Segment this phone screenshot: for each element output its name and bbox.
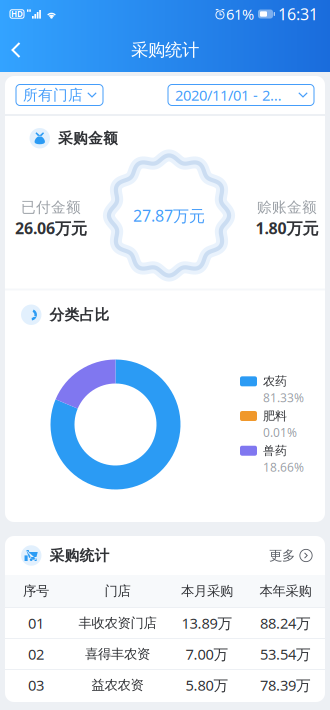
staticText: 肥料 <box>263 409 287 423</box>
staticText: 13.89万 <box>181 613 232 633</box>
staticText: 更多 <box>269 547 295 564</box>
staticText: 01 <box>28 613 44 633</box>
staticText: 88.24万 <box>260 613 311 633</box>
staticText: 采购统计 <box>131 39 199 61</box>
staticText: 16:31 <box>278 3 318 25</box>
button[interactable]: Back <box>0 32 32 68</box>
staticText: 采购金额 <box>58 129 118 147</box>
staticText: 02 <box>28 644 44 664</box>
staticText: 所有门店 <box>23 86 83 104</box>
staticText: 分类占比 <box>49 306 109 324</box>
staticText: 2020/11/01 - 2… <box>175 85 282 105</box>
staticText: 喜得丰农资 <box>85 646 150 662</box>
button[interactable]: 更多 <box>269 541 325 570</box>
staticText: 本月采购 <box>181 583 233 599</box>
staticText: 03 <box>28 675 44 695</box>
staticText: 5.80万 <box>185 675 228 695</box>
button[interactable]: 2020/11/01 - 2… <box>168 84 314 105</box>
button[interactable]: 所有门店 <box>16 84 103 105</box>
staticText: 61% <box>226 4 254 24</box>
staticText: 丰收农资门店 <box>78 615 156 631</box>
staticText: 0.01% <box>263 424 297 440</box>
staticText: HD <box>11 9 23 19</box>
staticText: 益农农资 <box>91 677 143 693</box>
staticText: 1.80万元 <box>255 217 318 239</box>
staticText: 78.39万 <box>260 675 311 695</box>
staticText: 门店 <box>104 583 130 599</box>
staticText: 53.54万 <box>260 644 311 664</box>
staticText: 27.87万元 <box>133 205 205 226</box>
staticText: 已付金额 <box>21 198 81 216</box>
staticText: 7.00万 <box>185 644 228 664</box>
staticText: 农药 <box>263 374 287 389</box>
staticText: 兽药 <box>263 443 287 458</box>
staticText: 序号 <box>23 583 49 599</box>
staticText: 本年采购 <box>259 583 311 599</box>
staticText: 采购统计 <box>49 546 109 564</box>
staticText: 26.06万元 <box>15 217 87 239</box>
staticText: 18.66% <box>263 459 304 475</box>
staticText: 赊账金额 <box>257 198 317 216</box>
staticText: 81.33% <box>263 390 304 406</box>
